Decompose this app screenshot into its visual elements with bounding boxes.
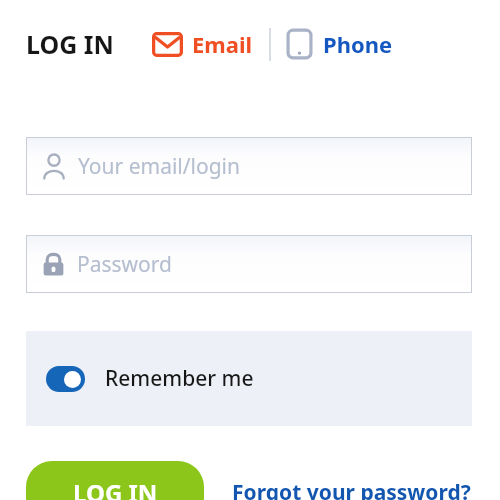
button[interactable]: Email xyxy=(150,29,255,59)
staticText: Password xyxy=(77,250,172,279)
button[interactable]: LOG IN xyxy=(26,461,204,500)
staticText: Your email/login xyxy=(78,152,240,181)
button[interactable]: Forgot your password? xyxy=(232,478,471,500)
staticText: Email xyxy=(192,29,253,59)
button[interactable]: Remember me xyxy=(26,331,472,426)
other: Email or login xyxy=(43,154,65,178)
other: Password xyxy=(43,252,64,276)
button[interactable]: Password xyxy=(26,235,472,293)
staticText: Remember me xyxy=(105,364,254,393)
button[interactable]: Email or login xyxy=(26,137,472,195)
button[interactable]: Phone xyxy=(285,29,395,59)
other: Phone xyxy=(287,29,312,59)
staticText: Phone xyxy=(323,29,393,59)
other: Email xyxy=(152,32,183,57)
staticText: Forgot your password? xyxy=(232,478,471,500)
staticText: LOG IN xyxy=(26,27,114,61)
staticText: LOG IN xyxy=(73,476,158,500)
